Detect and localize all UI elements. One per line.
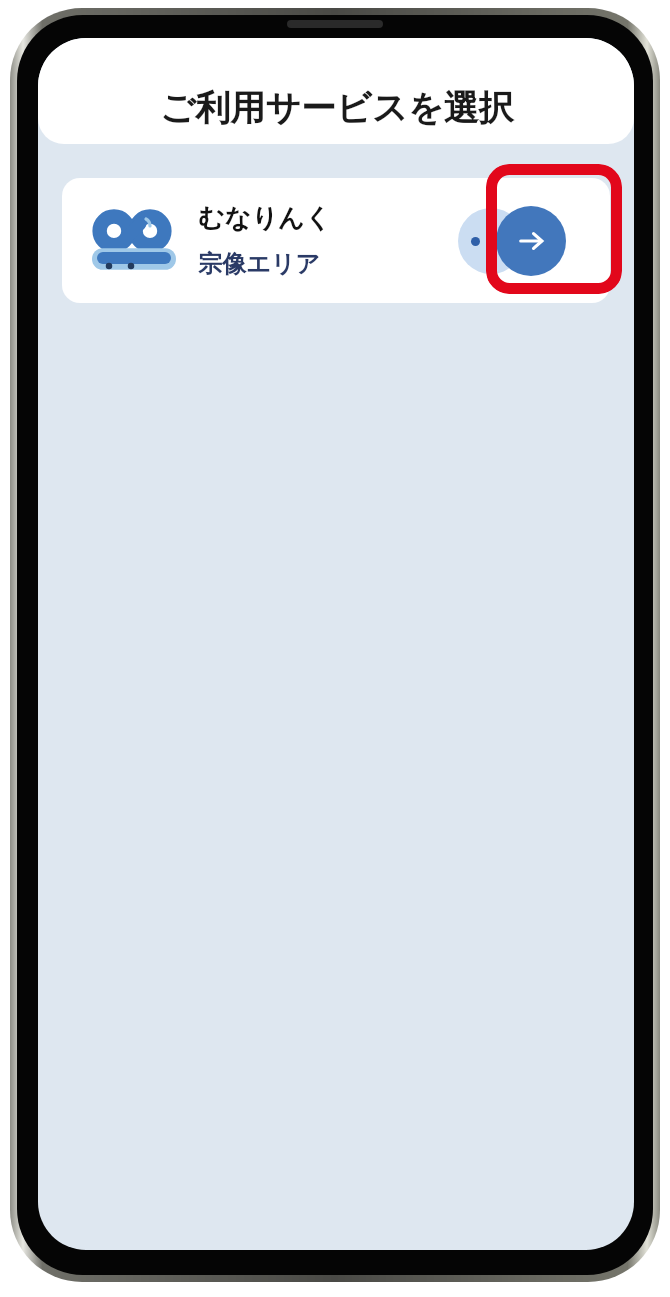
staticText: 宗像エリア (198, 249, 320, 279)
staticText: むなりんく (198, 202, 332, 235)
button[interactable]: むなりんく (62, 178, 610, 303)
staticText: ご利用サービスを選択 (159, 86, 514, 130)
button[interactable]: More options (458, 208, 524, 274)
button[interactable]: Go to むなりんく service (496, 206, 566, 276)
